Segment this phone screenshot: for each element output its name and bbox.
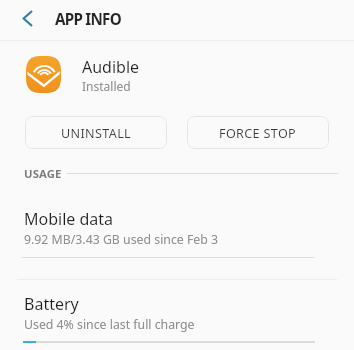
button[interactable]: Navigate up: [9, 0, 45, 36]
button[interactable]: Battery: [0, 287, 354, 342]
button[interactable]: UNINSTALL: [25, 116, 167, 149]
staticText: UNINSTALL: [61, 125, 132, 142]
staticText: Audible: [82, 56, 140, 78]
staticText: Used 4% since last full charge: [24, 316, 195, 333]
button[interactable]: Mobile data: [0, 202, 354, 257]
staticText: Battery: [24, 293, 79, 315]
button[interactable]: FORCE STOP: [187, 116, 329, 149]
staticText: USAGE: [24, 166, 62, 181]
staticText: Installed: [82, 78, 131, 94]
staticText: Mobile data: [24, 208, 114, 230]
staticText: APP INFO: [55, 9, 121, 30]
staticText: 9.92 MB/3.43 GB used since Feb 3: [24, 231, 219, 248]
staticText: FORCE STOP: [219, 125, 297, 142]
